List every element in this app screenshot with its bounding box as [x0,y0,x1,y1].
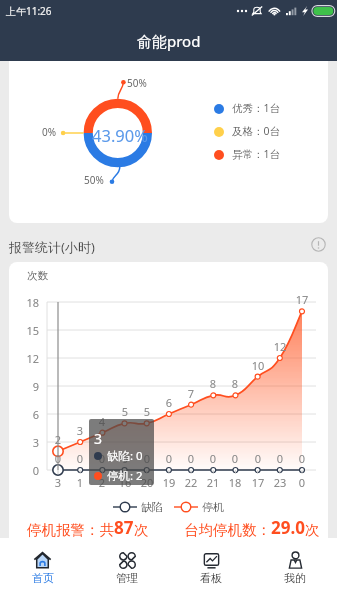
staticText: 6 [15,407,39,422]
staticText: 6 [158,395,180,410]
staticText: 3 [69,423,91,438]
staticText: 停机报警：共 [27,521,114,539]
button[interactable]: 停机 [174,499,224,515]
staticText: 3 [47,475,69,490]
button[interactable]: 缺陷 [113,499,163,515]
staticText: 异常：1台 [232,147,281,161]
button[interactable]: 看板 [169,538,253,600]
staticText: 0 [15,463,39,478]
staticText: 21 [202,475,224,490]
staticText: 5 [114,404,136,419]
staticText: 4 [91,414,113,429]
staticText: 台均停机数： [184,521,271,539]
staticText: 停机 [202,500,224,514]
staticText: 50% [127,76,147,90]
button[interactable]: 我的 [253,538,337,600]
staticText: 0% [42,125,57,139]
staticText: 缺陷: 0 [107,448,143,464]
staticText: 首页 [32,571,54,585]
button[interactable]: 异常：1台 [214,147,284,164]
staticText: 0 [202,451,224,466]
staticText: 0 [158,451,180,466]
staticText: 停机: 2 [107,468,143,484]
staticText: 22 [180,475,202,490]
button[interactable]: 停机报警：共 [27,516,149,539]
staticText: 0 [47,451,69,466]
staticText: 管理 [116,571,138,585]
staticText: 看板 [200,571,222,585]
staticText: 12 [269,339,291,354]
staticText: 0 [291,475,313,490]
button[interactable]: 管理 [85,538,169,600]
staticText: 0 [224,451,246,466]
staticText: 12 [15,351,39,366]
button[interactable]: 说明 [311,237,326,252]
staticText: 3 [15,435,39,450]
staticText: 43.90% [92,124,148,146]
staticText: 及格：0台 [232,124,281,138]
staticText: 0 [291,451,313,466]
staticText: 次 [134,521,149,539]
staticText: 0 [247,451,269,466]
staticText: 优秀：1台 [232,101,281,115]
staticText: 0 [69,451,91,466]
staticText: 俞能prod [137,31,201,51]
staticText: 3 [94,429,103,448]
staticText: 0 [91,451,113,466]
staticText: 上午11:26 [6,4,52,18]
button[interactable]: 及格：0台 [214,124,284,141]
staticText: 23 [269,475,291,490]
staticText: 0 [136,451,158,466]
button[interactable]: 首页 [0,538,85,600]
staticText: 50% [84,173,104,187]
staticText: 15 [15,323,39,338]
staticText: 20 [136,475,158,490]
staticText: 缺陷 [141,500,163,514]
staticText: 0 [269,451,291,466]
staticText: 18 [224,475,246,490]
staticText: 次数 [27,269,48,282]
staticText: 0 [180,451,202,466]
staticText: 87 [114,516,134,539]
staticText: 18 [15,295,39,310]
staticText: 16 [114,475,136,490]
staticText: 5 [136,404,158,419]
staticText: 2 [47,432,69,447]
staticText: 8 [224,376,246,391]
staticText: 8 [202,376,224,391]
staticText: 17 [291,292,313,307]
staticText: 次 [305,521,320,539]
staticText: 19 [158,475,180,490]
button[interactable]: 台均停机数： [184,516,320,539]
button[interactable]: 优秀：1台 [214,101,284,118]
staticText: 17 [247,475,269,490]
staticText: 10 [247,358,269,373]
staticText: 报警统计(小时) [9,238,95,256]
staticText: 2 [91,475,113,490]
staticText: 1 [69,475,91,490]
staticText: 29.0 [271,516,305,539]
staticText: 9 [15,379,39,394]
staticText: 7 [180,386,202,401]
staticText: 0 [114,451,136,466]
staticText: 我的 [284,571,306,585]
